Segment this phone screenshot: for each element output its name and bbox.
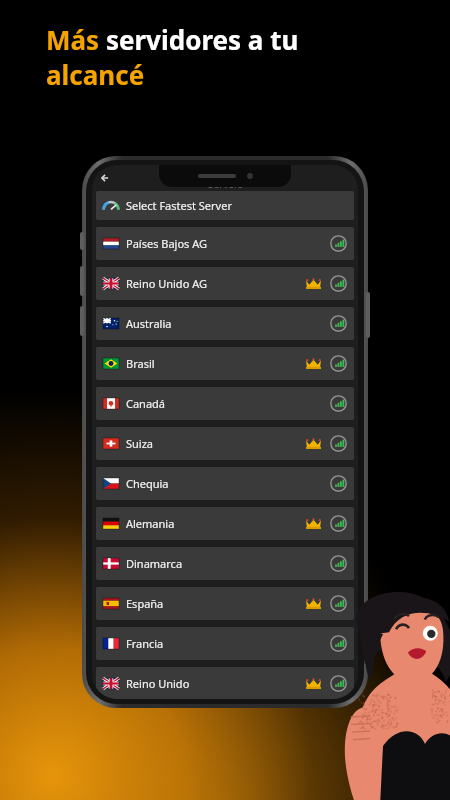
staticText: alcancé: [46, 57, 145, 92]
staticText: Chequia: [126, 476, 330, 491]
staticText: Servers: [208, 177, 243, 191]
button[interactable]: Países Bajos AG: [96, 227, 354, 260]
staticText: Reino Unido: [126, 676, 306, 691]
staticText: Australia: [126, 316, 330, 331]
staticText: Alemania: [126, 516, 306, 531]
button[interactable]: Dinamarca: [96, 547, 354, 580]
button[interactable]: Reino Unido: [96, 667, 354, 699]
staticText: Suiza: [126, 436, 306, 451]
button[interactable]: Reino Unido AG: [96, 267, 354, 300]
button[interactable]: Francia: [96, 627, 354, 660]
button[interactable]: Australia: [96, 307, 354, 340]
button[interactable]: España: [96, 587, 354, 620]
staticText: Reino Unido AG: [126, 276, 306, 291]
staticText: Países Bajos AG: [126, 236, 330, 251]
button[interactable]: Suiza: [96, 427, 354, 460]
staticText: Más servidores a tu: [46, 22, 299, 57]
button[interactable]: Select Fastest Server: [96, 191, 354, 220]
button[interactable]: Brasil: [96, 347, 354, 380]
staticText: Canadá: [126, 396, 330, 411]
staticText: Dinamarca: [126, 556, 330, 571]
button[interactable]: Chequia: [96, 467, 354, 500]
staticText: Select Fastest Server: [126, 198, 232, 213]
staticText: Brasil: [126, 356, 306, 371]
button[interactable]: Back: [97, 169, 115, 187]
staticText: España: [126, 596, 306, 611]
button[interactable]: Canadá: [96, 387, 354, 420]
button[interactable]: Alemania: [96, 507, 354, 540]
staticText: Francia: [126, 636, 330, 651]
